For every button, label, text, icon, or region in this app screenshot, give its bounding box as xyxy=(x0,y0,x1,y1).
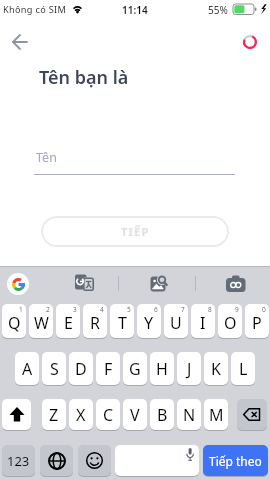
button[interactable]: X xyxy=(69,399,93,430)
button[interactable]: R xyxy=(83,304,107,338)
button[interactable]: Tiếp theo xyxy=(203,445,268,476)
button[interactable]: E xyxy=(56,304,80,338)
button[interactable]: N xyxy=(177,399,201,430)
staticText: J xyxy=(187,358,192,380)
staticText: U xyxy=(170,312,182,334)
staticText: 1 xyxy=(19,305,23,314)
button[interactable]: H xyxy=(150,352,174,385)
staticText: V xyxy=(130,404,140,426)
staticText: F xyxy=(104,358,113,380)
staticText: B xyxy=(157,404,168,426)
staticText: G xyxy=(129,358,141,380)
staticText: W xyxy=(34,312,49,334)
button[interactable] xyxy=(40,445,73,476)
staticText: A xyxy=(22,358,33,380)
button[interactable] xyxy=(10,33,30,51)
staticText: X xyxy=(76,404,86,426)
button[interactable]: 123 xyxy=(2,445,35,476)
staticText: 6 xyxy=(154,305,158,314)
staticText: K xyxy=(211,358,221,380)
staticText: Tên xyxy=(36,149,57,166)
button[interactable]: D xyxy=(69,352,93,385)
staticText: 0 xyxy=(262,305,266,314)
staticText: 4 xyxy=(100,305,104,314)
staticText: N xyxy=(183,404,196,426)
staticText: 2 xyxy=(46,305,50,314)
button[interactable]: S xyxy=(42,352,66,385)
button[interactable] xyxy=(226,275,246,292)
staticText: O xyxy=(224,312,237,334)
button[interactable] xyxy=(7,273,29,295)
staticText: 123 xyxy=(7,452,30,470)
staticText: Y xyxy=(144,312,154,334)
button[interactable]: Y xyxy=(137,304,161,338)
button[interactable] xyxy=(150,275,168,292)
staticText: I xyxy=(200,312,206,334)
staticText: R xyxy=(90,312,100,334)
button[interactable]: A xyxy=(15,352,39,385)
button[interactable]: J xyxy=(177,352,201,385)
staticText: Không có SIM xyxy=(3,3,67,16)
button[interactable]: B xyxy=(150,399,174,430)
button[interactable]: G xyxy=(123,352,147,385)
button[interactable]: P xyxy=(245,304,269,338)
staticText: T xyxy=(118,312,127,334)
staticText: D xyxy=(75,358,87,380)
button[interactable]: F xyxy=(96,352,120,385)
button[interactable]: C xyxy=(96,399,120,430)
staticText: M xyxy=(209,404,224,426)
staticText: Q xyxy=(8,312,21,334)
staticText: 3 xyxy=(73,305,77,314)
button[interactable] xyxy=(2,399,31,430)
button[interactable]: Z xyxy=(42,399,66,430)
staticText: E xyxy=(64,312,73,334)
button[interactable]: L xyxy=(231,352,255,385)
staticText: 7 xyxy=(181,305,185,314)
button[interactable] xyxy=(78,445,111,476)
staticText: 9 xyxy=(235,305,239,314)
button[interactable]: I xyxy=(191,304,215,338)
button[interactable]: O xyxy=(218,304,242,338)
button[interactable]: K xyxy=(204,352,228,385)
staticText: S xyxy=(50,358,59,380)
staticText: 55% xyxy=(208,3,228,17)
staticText: P xyxy=(252,312,262,334)
staticText: C xyxy=(103,404,114,426)
button[interactable]: TIẾP xyxy=(41,216,229,247)
staticText: 8 xyxy=(208,305,212,314)
staticText: Tên bạn là xyxy=(39,65,129,90)
staticText: H xyxy=(156,358,168,380)
button[interactable] xyxy=(75,274,94,292)
button[interactable]: V xyxy=(123,399,147,430)
button[interactable]: W xyxy=(29,304,53,338)
staticText: 11:14 xyxy=(122,3,148,17)
button[interactable]: T xyxy=(110,304,134,338)
staticText: L xyxy=(239,358,248,380)
staticText: Z xyxy=(49,404,59,426)
button[interactable] xyxy=(237,399,267,430)
button[interactable]: U xyxy=(164,304,188,338)
button[interactable]: M xyxy=(204,399,228,430)
button[interactable]: Q xyxy=(2,304,26,338)
staticText: 5 xyxy=(127,305,131,314)
staticText: Tiếp theo xyxy=(209,453,262,469)
staticText: TIẾP xyxy=(121,224,150,239)
button[interactable] xyxy=(115,445,199,476)
